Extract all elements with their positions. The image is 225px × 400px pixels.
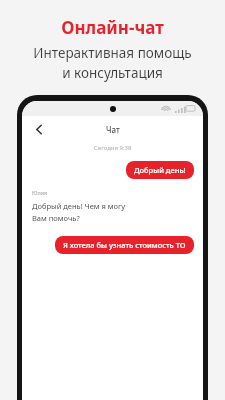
button[interactable]: Я хотела бы узнать стоимость ТО [55, 236, 194, 254]
staticText: Я хотела бы узнать стоимость ТО [63, 240, 186, 250]
staticText: и консультация [62, 64, 163, 82]
button[interactable]: Добрый день! [126, 161, 194, 179]
staticText: Вам помочь? [32, 213, 80, 223]
staticText: Добрый день! [134, 165, 186, 175]
staticText: Добрый день! Чем я могу [32, 201, 126, 211]
button[interactable]: Юлия [32, 189, 173, 223]
staticText: Сегодня 9:38 [94, 144, 132, 152]
staticText: Интерактивная помощь [33, 44, 192, 62]
staticText: Чат [106, 124, 120, 135]
button[interactable]: Назад [28, 118, 50, 140]
staticText: Онлайн-чат [61, 16, 164, 39]
staticText: Юлия [32, 189, 48, 196]
